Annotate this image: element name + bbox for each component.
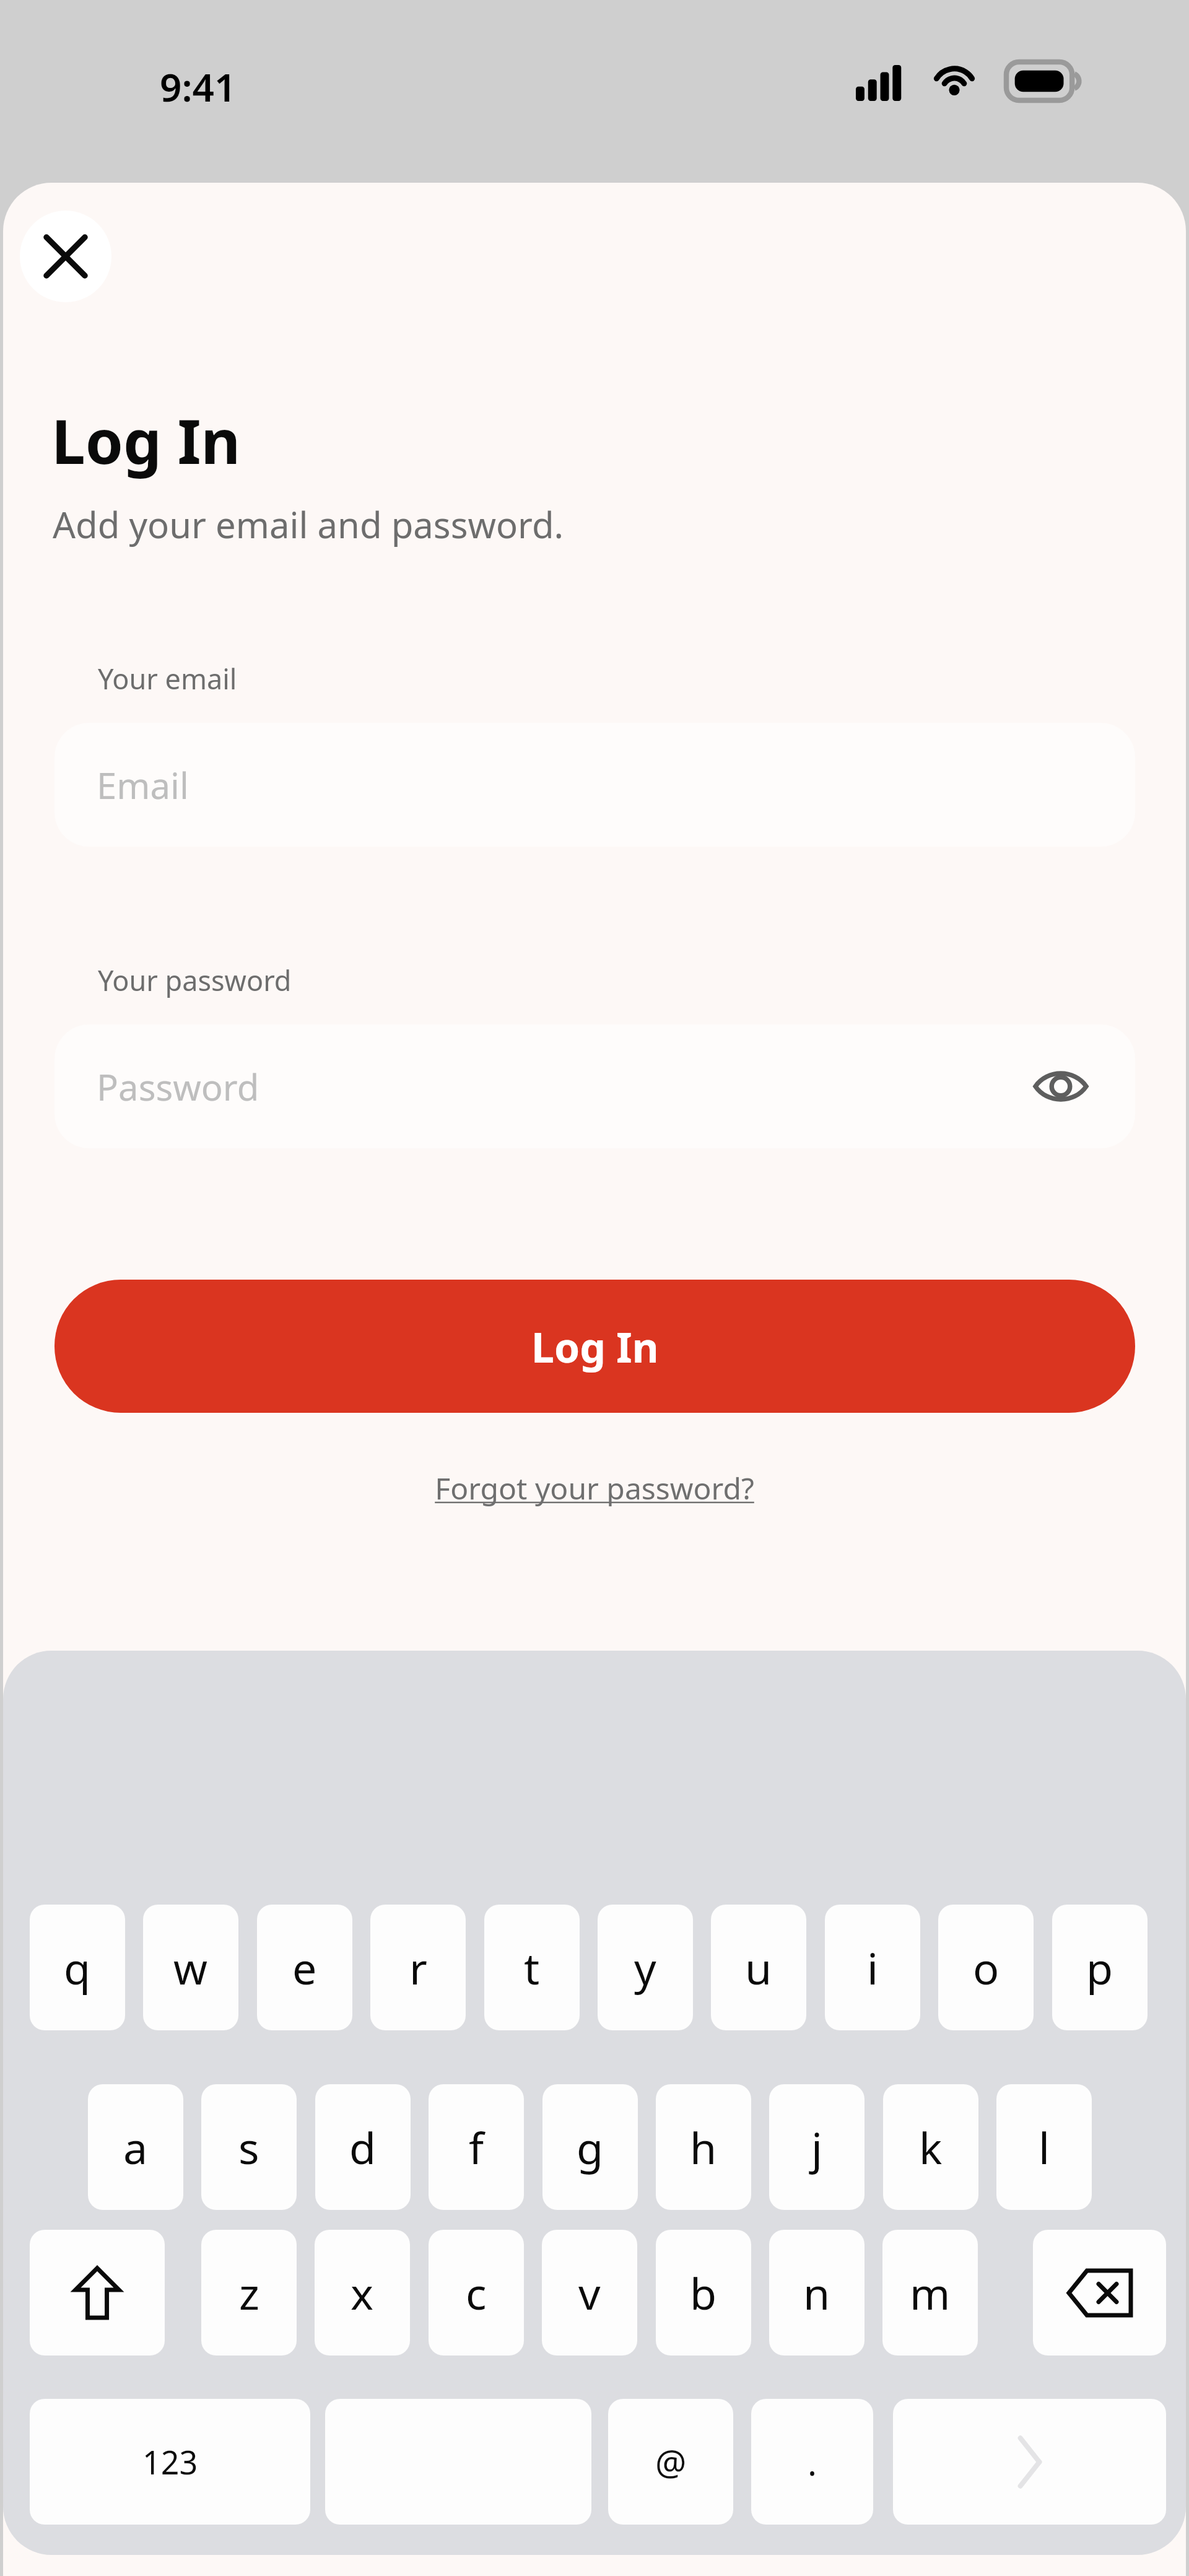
- staticText: l: [1039, 2118, 1050, 2177]
- staticText: Email: [97, 761, 189, 810]
- button[interactable]: Forgot your password?: [3, 1468, 1186, 1524]
- button[interactable]: l: [996, 2084, 1092, 2210]
- button[interactable]: .: [751, 2399, 873, 2525]
- staticText: 9:41: [160, 61, 237, 113]
- button[interactable]: p: [1052, 1905, 1148, 2030]
- button[interactable]: r: [370, 1905, 466, 2030]
- button[interactable]: g: [542, 2084, 638, 2210]
- staticText: r: [409, 1938, 427, 1997]
- button[interactable]: y: [598, 1905, 693, 2030]
- staticText: s: [238, 2118, 259, 2177]
- button[interactable]: w: [143, 1905, 238, 2030]
- staticText: x: [351, 2263, 374, 2322]
- button[interactable]: z: [201, 2230, 297, 2356]
- button[interactable]: v: [542, 2230, 637, 2356]
- staticText: .: [808, 2438, 817, 2486]
- button[interactable]: a: [88, 2084, 183, 2210]
- button[interactable]: c: [429, 2230, 524, 2356]
- staticText: g: [577, 2118, 604, 2177]
- button[interactable]: Show password: [1030, 1055, 1092, 1117]
- staticText: e: [292, 1938, 317, 1997]
- staticText: d: [349, 2118, 377, 2177]
- staticText: b: [690, 2263, 717, 2322]
- staticText: v: [578, 2263, 601, 2322]
- button[interactable]: x: [315, 2230, 410, 2356]
- staticText: m: [910, 2263, 951, 2322]
- staticText: h: [690, 2118, 717, 2177]
- button[interactable]: n: [769, 2230, 865, 2356]
- staticText: p: [1086, 1938, 1113, 1997]
- staticText: Your email: [98, 660, 237, 697]
- button[interactable]: f: [429, 2084, 524, 2210]
- staticText: a: [123, 2118, 148, 2177]
- button[interactable]: Close: [20, 211, 111, 302]
- button[interactable]: Password: [54, 1024, 1135, 1148]
- button[interactable]: @: [608, 2399, 733, 2525]
- button[interactable]: m: [882, 2230, 978, 2356]
- button[interactable]: k: [883, 2084, 978, 2210]
- staticText: o: [973, 1938, 1000, 1997]
- button[interactable]: s: [201, 2084, 297, 2210]
- button[interactable]: d: [315, 2084, 411, 2210]
- button[interactable]: Backspace: [1033, 2230, 1166, 2356]
- staticText: Log In: [531, 1319, 659, 1374]
- staticText: f: [469, 2118, 484, 2177]
- button[interactable]: Email: [54, 723, 1135, 847]
- button[interactable]: u: [711, 1905, 806, 2030]
- button[interactable]: e: [257, 1905, 352, 2030]
- button[interactable]: o: [938, 1905, 1034, 2030]
- button[interactable]: Shift: [30, 2230, 165, 2356]
- staticText: y: [634, 1938, 656, 1997]
- staticText: Forgot your password?: [435, 1468, 754, 1508]
- button[interactable]: Return: [893, 2399, 1166, 2525]
- staticText: 123: [142, 2440, 198, 2484]
- staticText: k: [919, 2118, 943, 2177]
- staticText: z: [239, 2263, 259, 2322]
- staticText: Log In: [51, 399, 241, 481]
- staticText: j: [811, 2118, 823, 2177]
- button[interactable]: i: [825, 1905, 920, 2030]
- staticText: t: [524, 1938, 540, 1997]
- staticText: n: [803, 2263, 830, 2322]
- staticText: u: [745, 1938, 772, 1997]
- staticText: q: [64, 1938, 91, 1997]
- button[interactable]: 123: [30, 2399, 310, 2525]
- staticText: w: [173, 1938, 208, 1997]
- staticText: Add your email and password.: [53, 500, 564, 549]
- staticText: Your password: [98, 961, 292, 999]
- button[interactable]: q: [30, 1905, 125, 2030]
- button[interactable]: Log In: [54, 1280, 1135, 1413]
- button[interactable]: j: [769, 2084, 865, 2210]
- staticText: @: [655, 2438, 687, 2486]
- staticText: Password: [97, 1062, 259, 1111]
- staticText: c: [466, 2263, 487, 2322]
- button[interactable]: t: [484, 1905, 580, 2030]
- button[interactable]: h: [656, 2084, 751, 2210]
- staticText: i: [867, 1938, 879, 1997]
- button[interactable]: b: [656, 2230, 751, 2356]
